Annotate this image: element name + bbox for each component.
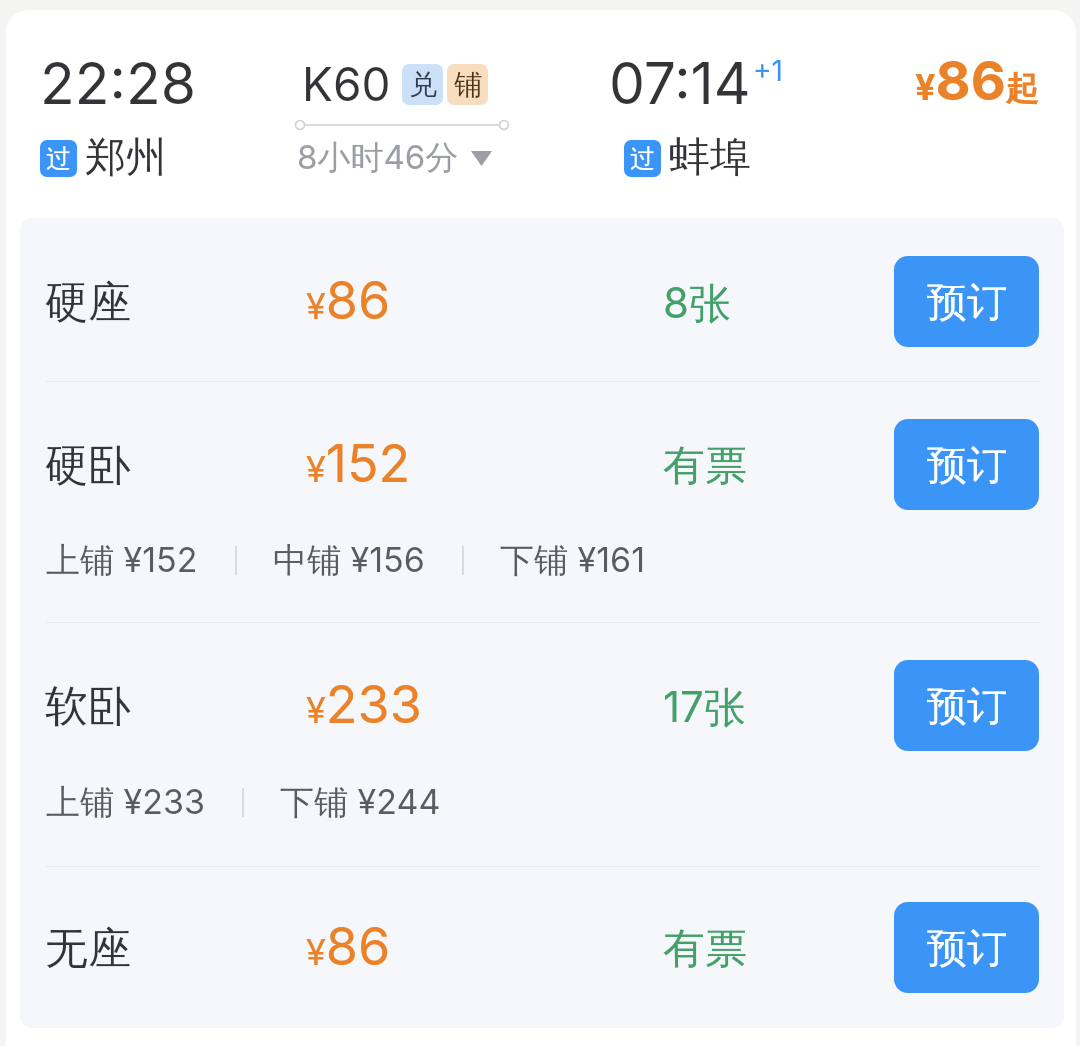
staticText: 过 (46, 143, 71, 174)
staticText: 下铺 ¥161 (500, 539, 645, 582)
staticText: 无座 (45, 922, 131, 976)
button[interactable]: 预订 (894, 419, 1039, 510)
staticText: +1 (753, 54, 783, 88)
staticText: 22:28 (40, 49, 196, 118)
staticText: 郑州 (85, 132, 167, 184)
staticText: ¥86 (306, 915, 391, 978)
staticText: 蚌埠 (669, 132, 751, 184)
button[interactable] (20, 381, 1064, 621)
staticText: 预订 (927, 923, 1007, 973)
staticText: 中铺 ¥156 (273, 539, 425, 582)
staticText: 8张 (663, 277, 731, 330)
staticText: ¥233 (306, 673, 422, 736)
button[interactable]: 预订 (894, 902, 1039, 993)
staticText: 17张 (663, 681, 746, 734)
staticText: 兑 (409, 67, 437, 102)
staticText: 硬座 (45, 276, 131, 330)
staticText: 上铺 ¥233 (46, 781, 205, 824)
staticText: ¥86 (306, 269, 391, 332)
staticText: 铺 (454, 67, 482, 102)
staticText: 预订 (927, 681, 1007, 731)
staticText: 过 (630, 143, 655, 174)
staticText: 07:14 (609, 49, 751, 118)
staticText: K60 (302, 56, 391, 112)
staticText: 硬卧 (45, 439, 131, 493)
button[interactable]: 预订 (894, 660, 1039, 751)
staticText: 8小时46分 (297, 137, 459, 179)
staticText: ¥152 (306, 432, 411, 495)
staticText: 有票 (663, 923, 747, 976)
staticText: ¥86起 (915, 48, 1039, 113)
button[interactable]: 预订 (894, 256, 1039, 347)
button[interactable] (20, 218, 1064, 381)
staticText: 有票 (663, 440, 747, 493)
button[interactable] (20, 864, 1064, 1025)
staticText: 预订 (927, 440, 1007, 490)
button[interactable] (20, 622, 1064, 865)
staticText: 下铺 ¥244 (280, 781, 441, 824)
staticText: 预订 (927, 277, 1007, 327)
staticText: 软卧 (45, 680, 131, 734)
staticText: 上铺 ¥152 (46, 539, 198, 582)
